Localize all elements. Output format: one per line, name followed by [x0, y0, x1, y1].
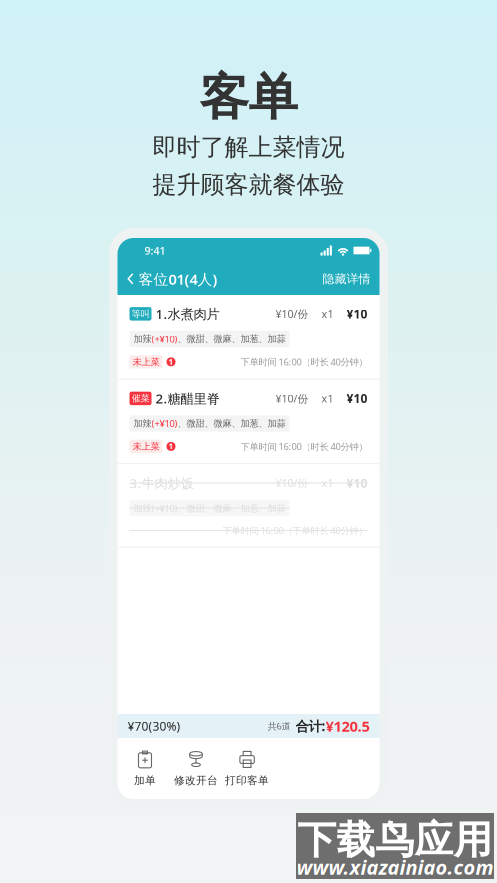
staticText: ¥10/份 — [275, 391, 308, 405]
staticText: 提升顾客就餐体验 — [152, 170, 344, 200]
staticText: ¥120.5 — [325, 716, 369, 736]
staticText: 3.牛肉炒饭 — [129, 474, 193, 492]
button[interactable]: 修改开台 — [170, 746, 221, 790]
staticText: 即时了解上菜情况 — [152, 133, 344, 162]
staticText: 2.糖醋里脊 — [155, 390, 219, 407]
staticText: 合计: — [295, 717, 325, 735]
staticText: 修改开台 — [174, 774, 218, 787]
staticText: www.xiazainiao.com — [296, 854, 493, 880]
staticText: 催菜 — [131, 393, 149, 404]
button[interactable]: 客位01(4人) — [117, 269, 217, 289]
staticText: 未上菜 — [132, 356, 159, 368]
staticText: 9:41 — [144, 243, 165, 258]
staticText: 下载鸟应用 — [297, 816, 492, 864]
staticText: (+¥10) — [151, 333, 177, 345]
staticText: 、微甜、微麻、加葱、加蒜 — [177, 333, 285, 345]
staticText: 打印客单 — [225, 774, 269, 787]
staticText: ¥70(30%) — [127, 718, 180, 734]
staticText: 共6道 — [267, 720, 290, 732]
staticText: 客单 — [199, 67, 297, 128]
staticText: ¥10 — [346, 475, 367, 491]
staticText: 下单时间 16:00（时长 40分钟） — [240, 440, 367, 453]
staticText: 1 — [168, 356, 173, 367]
staticText: 加单 — [134, 774, 156, 787]
staticText: ¥10/份 — [275, 476, 308, 490]
staticText: x1 — [321, 476, 333, 490]
staticText: x1 — [321, 307, 333, 321]
staticText: 等叫 — [131, 308, 149, 320]
staticText: 加辣(+¥10)、微甜、微麻、加葱、加蒜 — [133, 502, 285, 514]
staticText: ¥10/份 — [275, 307, 308, 321]
staticText: 下单时间 16:00（时长 40分钟） — [240, 356, 367, 368]
staticText: 加辣 — [133, 418, 151, 429]
staticText: 客位01(4人) — [138, 269, 217, 289]
staticText: 下单时间 16:00（下单时长 40分钟） — [222, 524, 367, 537]
staticText: 隐藏详情 — [322, 272, 370, 286]
staticText: (+¥10) — [151, 417, 177, 430]
staticText: 加辣 — [133, 333, 151, 345]
button[interactable]: 打印客单 — [221, 746, 272, 790]
staticText: 、微甜、微麻、加葱、加蒜 — [177, 418, 285, 429]
staticText: x1 — [321, 391, 333, 405]
button[interactable]: 隐藏详情 — [322, 272, 379, 286]
button[interactable]: 加单 — [119, 746, 170, 790]
staticText: 未上菜 — [132, 441, 159, 452]
staticText: ¥10 — [346, 306, 367, 322]
staticText: 1 — [168, 441, 173, 452]
staticText: 1.水煮肉片 — [155, 305, 219, 323]
staticText: ¥10 — [346, 390, 367, 406]
